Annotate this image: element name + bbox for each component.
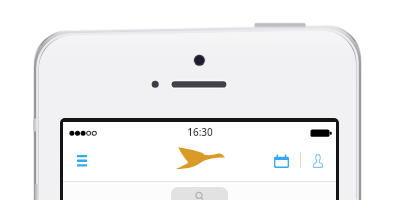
button[interactable]: Menu — [69, 147, 95, 173]
staticText: 16:30 — [187, 125, 213, 139]
button[interactable]: Home — [176, 147, 225, 169]
button[interactable]: Search — [171, 187, 228, 200]
button[interactable]: Profile — [305, 148, 330, 173]
button[interactable]: Calendar — [269, 148, 294, 173]
